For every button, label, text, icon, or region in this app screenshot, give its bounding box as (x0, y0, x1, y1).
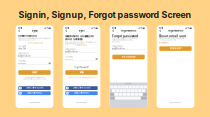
staticText: RESET PASSWORD (121, 56, 135, 58)
button[interactable]: G (18, 91, 51, 95)
button[interactable]: RESET PASSWORD (112, 55, 145, 59)
staticText: PASSWORD (65, 56, 73, 58)
staticText: •••••••• (65, 58, 73, 60)
button[interactable]: Create new account (27, 42, 43, 44)
button[interactable]: FULL NAME (18, 46, 51, 50)
button[interactable]: Back (112, 29, 116, 33)
staticText: PASSWORD (18, 60, 26, 62)
staticText: jane@mail.com (65, 51, 78, 53)
button[interactable]: OPEN EMAIL APP (159, 46, 192, 51)
staticText: CONNECT WITH FACEBOOK (72, 87, 90, 89)
button[interactable]: EMAIL ADDRESS (18, 53, 51, 57)
staticText: G (66, 92, 68, 94)
staticText: EMAIL ADDRESS (65, 49, 76, 51)
staticText: Sign Up (31, 30, 37, 32)
staticText: Reset email sent (159, 34, 186, 38)
button[interactable]: G (65, 91, 98, 95)
staticText: OPEN EMAIL APP (169, 47, 181, 50)
button[interactable]: Back (18, 29, 22, 33)
staticText: 9:41 (65, 27, 69, 29)
staticText: Forgot Password? (74, 66, 89, 68)
staticText: •••••••• (18, 62, 26, 64)
staticText: Don't have account? (68, 77, 82, 78)
button[interactable]: PASSWORD (65, 56, 98, 60)
button[interactable]: Create a new one. (75, 44, 87, 46)
staticText: Signin, Signup, Forgot password Screen (18, 9, 191, 20)
staticText: Create new account (82, 77, 95, 78)
button[interactable]: EMAIL ADDRESS (112, 46, 145, 50)
staticText: Enter your name, email and password to s… (18, 37, 50, 41)
staticText: Welcome to SnackByte Food Services (65, 35, 93, 41)
button[interactable]: f (65, 86, 98, 90)
button[interactable]: f (18, 86, 51, 90)
staticText: Sign In (78, 30, 84, 32)
button[interactable]: PASSWORD (18, 60, 51, 65)
staticText: CONNECT WITH GOOGLE (73, 92, 89, 94)
staticText: Forgot Password (168, 30, 183, 32)
button[interactable]: SIGN IN (65, 70, 98, 75)
staticText: CONNECT WITH GOOGLE (26, 92, 42, 94)
staticText: Jane Doe (18, 47, 26, 50)
staticText: G (19, 92, 21, 94)
staticText: Forgot Password (121, 30, 136, 32)
staticText: f (20, 87, 21, 89)
staticText: By signing up you agree to our Terms & C… (22, 77, 46, 80)
staticText: Enter your email address below and we'll… (112, 37, 137, 43)
staticText: Enter your Phone number or Email address… (65, 41, 96, 45)
staticText: jane@mail.com (112, 48, 125, 50)
staticText: EMAIL ADDRESS (112, 46, 123, 48)
button[interactable]: SIGN UP (18, 70, 51, 75)
button[interactable]: Back (65, 29, 69, 33)
staticText: We have sent instructions about how to r… (159, 37, 184, 41)
staticText: f (67, 87, 68, 89)
staticText: Create a new one. (75, 44, 87, 46)
staticText: jane@mail.com (159, 42, 168, 44)
staticText: SIGN UP (32, 71, 37, 74)
staticText: 9:41 (18, 27, 22, 29)
button[interactable]: Create new account (82, 77, 95, 78)
staticText: FULL NAME (18, 46, 26, 47)
staticText: jane@mail.com (18, 55, 31, 57)
staticText: Create Account (18, 34, 37, 37)
button[interactable]: Forgot Password? (73, 66, 89, 69)
staticText: 9:41 (159, 27, 163, 29)
button[interactable]: EMAIL ADDRESS (65, 49, 98, 53)
button[interactable]: Back (159, 29, 163, 33)
staticText: 9:41 (112, 27, 116, 29)
staticText: Forgot password (112, 34, 138, 38)
staticText: Create new account (27, 42, 43, 44)
staticText: CONNECT WITH FACEBOOK (25, 87, 43, 89)
staticText: EMAIL ADDRESS (18, 53, 29, 55)
staticText: SIGN IN (79, 71, 83, 74)
